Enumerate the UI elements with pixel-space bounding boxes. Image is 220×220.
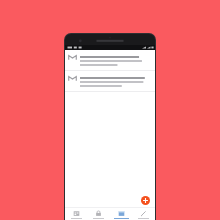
other: Gmail: [68, 53, 77, 62]
button[interactable]: Compose: [141, 196, 150, 205]
other: Tasks: [95, 210, 102, 217]
button[interactable]: Meetings: [66, 209, 87, 220]
button[interactable]: Tasks: [88, 209, 109, 220]
other: Gmail: [68, 74, 77, 83]
button[interactable]: Notes: [133, 209, 154, 220]
button[interactable]: Gmail: [65, 71, 155, 91]
button[interactable]: Documents: [111, 209, 132, 220]
other: Meetings: [73, 210, 80, 217]
other: Documents: [118, 210, 125, 217]
other: Notes: [140, 210, 147, 217]
button[interactable]: Gmail: [65, 50, 155, 70]
